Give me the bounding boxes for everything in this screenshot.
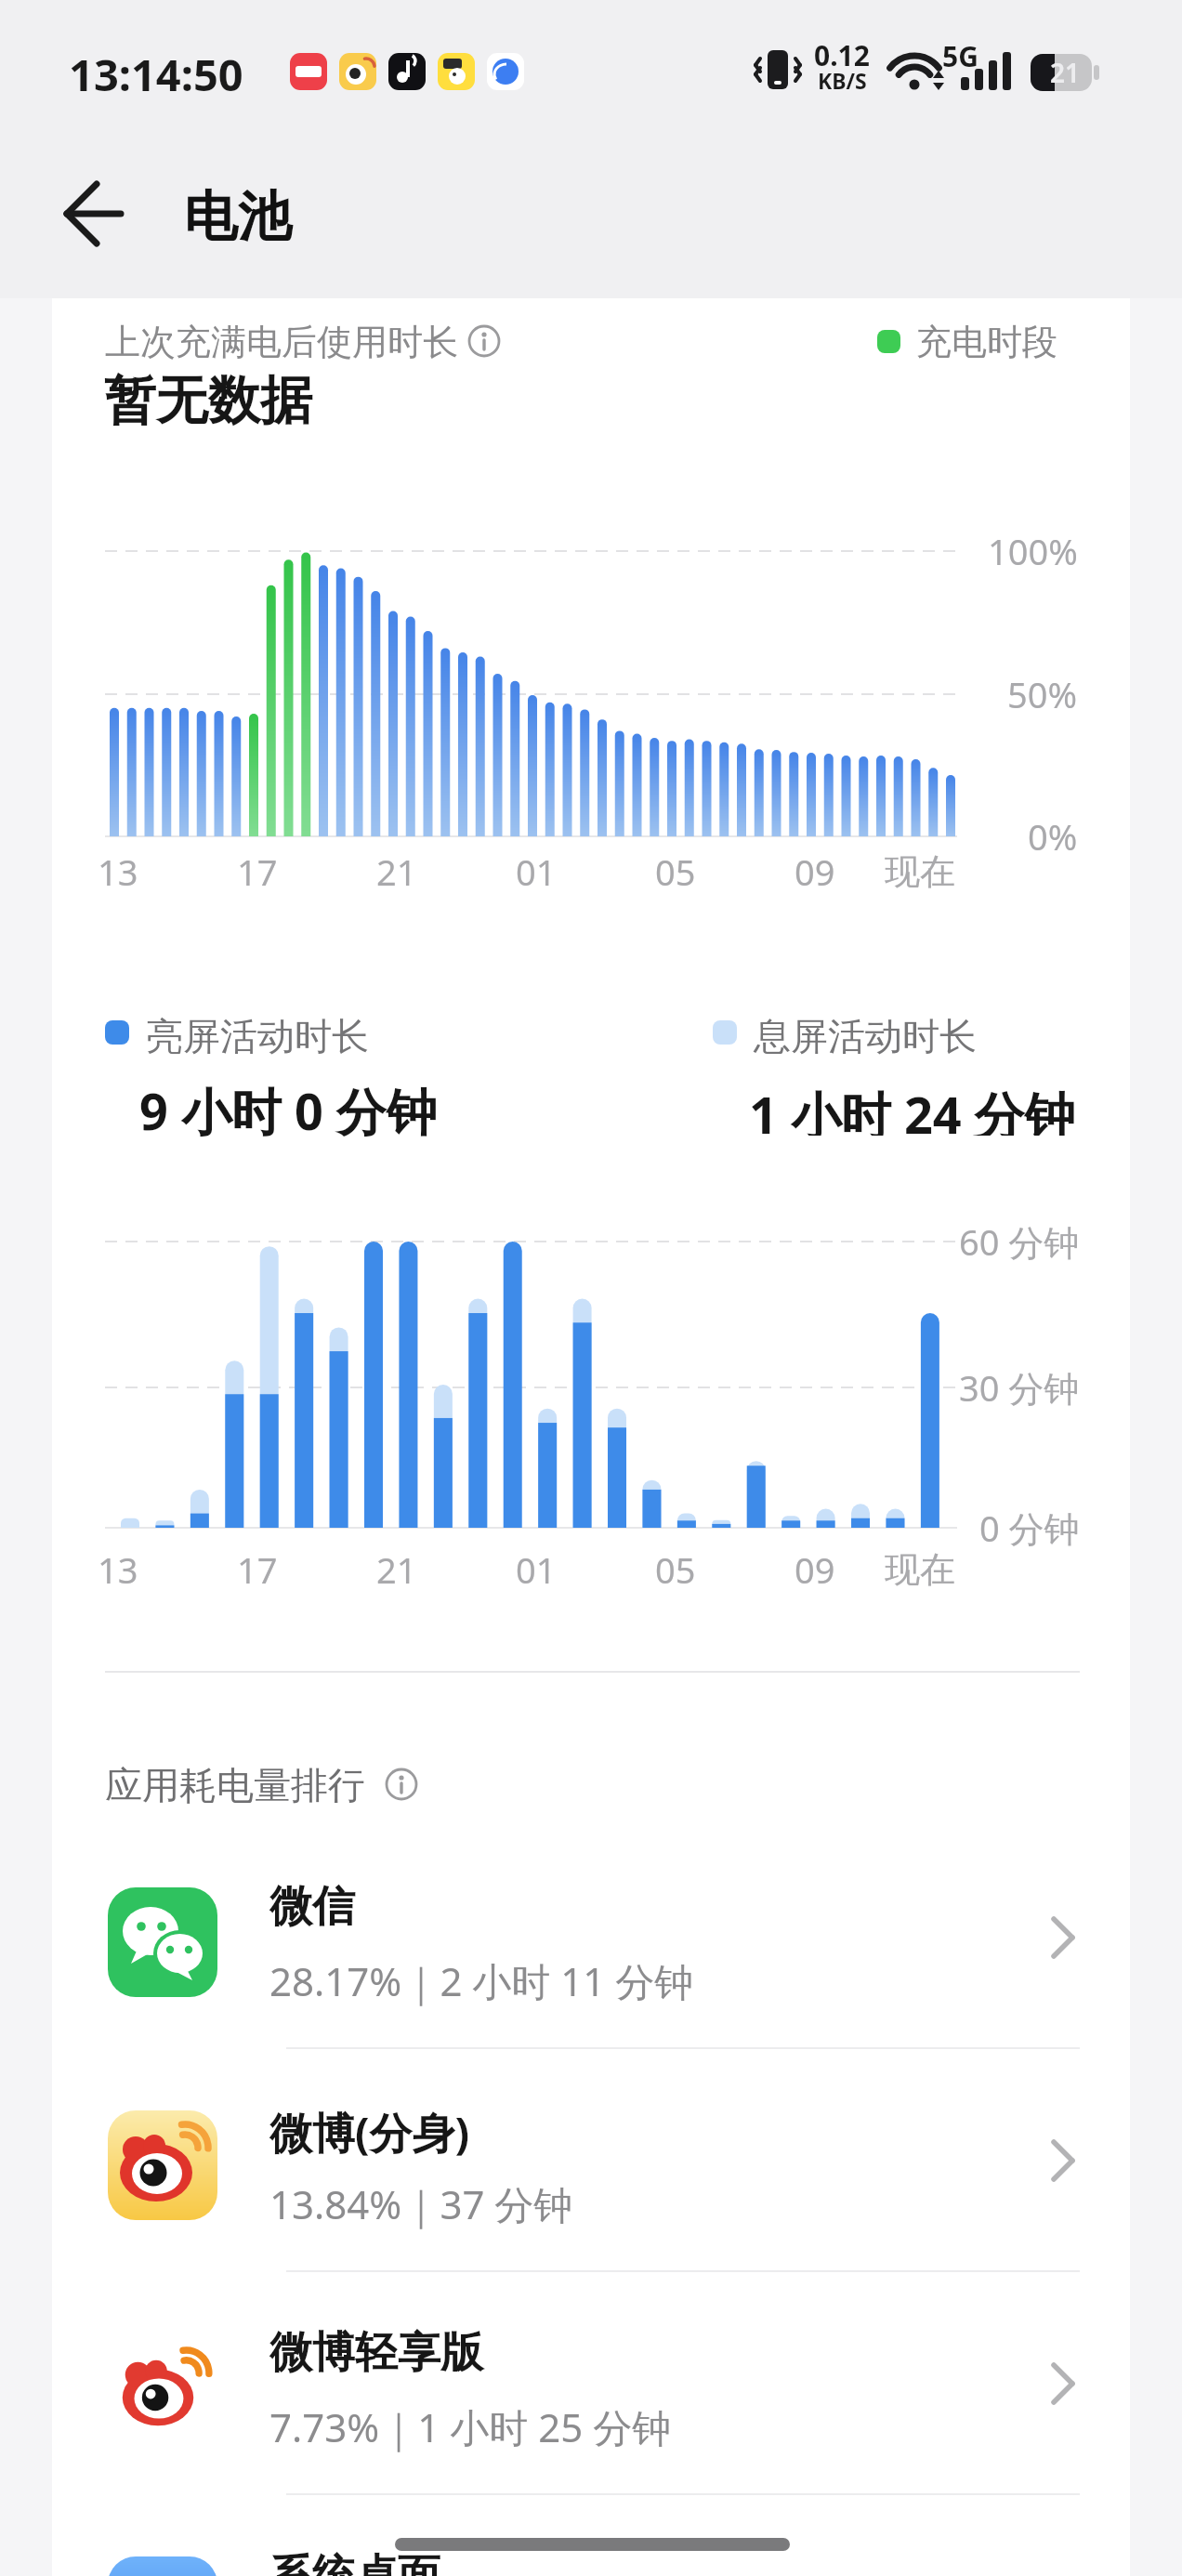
button[interactable] bbox=[462, 319, 506, 363]
staticText: 1 小时 24 分钟 bbox=[749, 1080, 1075, 1136]
staticText: 0.12 bbox=[814, 36, 870, 74]
button[interactable] bbox=[52, 1826, 1130, 2049]
staticText: 13 bbox=[98, 848, 138, 896]
staticText: 亮屏活动时长 bbox=[146, 1013, 369, 1059]
staticText: 微博(分身) bbox=[269, 2103, 470, 2162]
staticText: 现在 bbox=[885, 1547, 955, 1592]
staticText: 现在 bbox=[885, 849, 955, 894]
staticText: 电池 bbox=[184, 183, 292, 251]
staticText: 09 bbox=[795, 1545, 835, 1594]
staticText: 05 bbox=[655, 1545, 696, 1594]
staticText: 0% bbox=[1028, 812, 1078, 861]
staticText: 充电时段 bbox=[916, 320, 1057, 364]
staticText: 21 bbox=[376, 1545, 417, 1594]
staticText: 100% bbox=[988, 527, 1078, 575]
staticText: 应用耗电量排行 bbox=[105, 1762, 365, 1808]
staticText: 01 bbox=[516, 1545, 557, 1594]
staticText: 系统桌面 bbox=[269, 2549, 440, 2576]
staticText: 30 分钟 bbox=[959, 1363, 1080, 1412]
button[interactable] bbox=[379, 1762, 424, 1807]
staticText: 50% bbox=[1007, 670, 1078, 718]
staticText: 5G bbox=[942, 37, 978, 75]
staticText: 60 分钟 bbox=[959, 1217, 1080, 1266]
staticText: 上次充满电后使用时长 bbox=[105, 320, 458, 364]
button[interactable] bbox=[37, 167, 139, 260]
staticText: 微博轻享版 bbox=[269, 2326, 483, 2380]
button[interactable] bbox=[52, 2495, 1130, 2576]
staticText: 17 bbox=[237, 1545, 278, 1594]
staticText: 微信 bbox=[269, 1880, 355, 1934]
staticText: 7.73%｜1 小时 25 分钟 bbox=[269, 2400, 672, 2453]
staticText: 9 小时 0 分钟 bbox=[139, 1076, 437, 1145]
staticText: 21 bbox=[1050, 55, 1081, 90]
staticText: KB/S bbox=[818, 66, 867, 95]
staticText: 09 bbox=[795, 848, 835, 896]
staticText: 01 bbox=[516, 848, 557, 896]
staticText: 息屏活动时长 bbox=[754, 1013, 977, 1059]
staticText: 17 bbox=[237, 848, 278, 896]
staticText: 暂无数据 bbox=[104, 368, 312, 434]
button[interactable] bbox=[52, 2272, 1130, 2495]
button[interactable] bbox=[52, 2049, 1130, 2272]
staticText: 13.84%｜37 分钟 bbox=[269, 2177, 573, 2230]
staticText: 05 bbox=[655, 848, 696, 896]
staticText: 13 bbox=[98, 1545, 138, 1594]
staticText: 13:14:50 bbox=[69, 45, 243, 104]
staticText: 28.17%｜2 小时 11 分钟 bbox=[269, 1954, 694, 2007]
staticText: 21 bbox=[376, 848, 417, 896]
staticText: 0 分钟 bbox=[979, 1504, 1080, 1552]
